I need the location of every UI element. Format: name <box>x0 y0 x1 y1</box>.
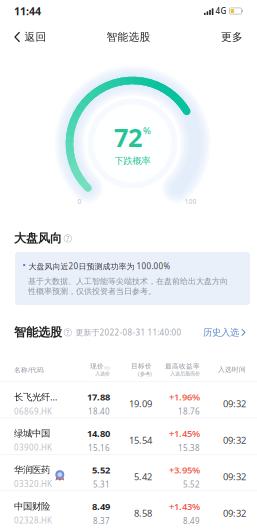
button[interactable]: 更多 <box>219 24 245 49</box>
staticText: 8.49 <box>92 500 110 512</box>
staticText: 8.49 <box>183 515 200 526</box>
staticText: 中国财险 <box>14 501 50 512</box>
staticText: (参考) <box>138 370 152 377</box>
staticText: 入选后最高价 <box>170 370 200 377</box>
staticText: 历史入选 <box>203 327 239 338</box>
staticText: 基于大数据、人工智能等尖端技术，在盘前给出大盘方向 性概率预测，仅供投资者当日参… <box>28 276 228 296</box>
staticText: 现价 <box>90 362 104 370</box>
staticText: 5.42 <box>134 470 152 483</box>
staticText: 02328.HK <box>14 515 52 526</box>
button[interactable]: 绿城中国 <box>0 417 257 454</box>
staticText: 100 <box>184 197 196 206</box>
staticText: 更新于2022-08-31 11:40:00 <box>75 327 181 338</box>
staticText: ? <box>66 234 69 243</box>
staticText: 智能选股 <box>14 325 62 340</box>
staticText: 72 <box>114 120 142 154</box>
staticText: 06869.HK <box>14 406 52 417</box>
staticText: 18.40 <box>88 406 110 417</box>
staticText: 更多 <box>221 30 243 43</box>
staticText: 14.80 <box>87 427 110 439</box>
button[interactable]: 中国财险 <box>0 490 257 527</box>
button[interactable]: 返回 <box>12 24 48 49</box>
staticText: 8.37 <box>93 515 110 526</box>
staticText: +1.45% <box>169 427 200 439</box>
staticText: +3.95% <box>169 464 200 476</box>
staticText: 长飞光纤… <box>14 391 57 403</box>
staticText: 大盘风向 <box>14 231 62 246</box>
button[interactable]: 华润医药 <box>0 454 257 490</box>
staticText: 17.88 <box>87 391 110 403</box>
staticText: % <box>143 124 151 137</box>
staticText: 名称/代码 <box>14 365 44 374</box>
staticText: 5.52 <box>92 464 110 476</box>
staticText: 0 <box>77 197 81 206</box>
staticText: 15.54 <box>129 434 152 446</box>
staticText: 绿城中国 <box>14 428 50 439</box>
staticText: 19.09 <box>129 397 152 410</box>
staticText: 03900.HK <box>14 442 52 453</box>
staticText: ? <box>66 328 69 337</box>
staticText: 4G <box>215 6 226 16</box>
staticText: 5.31 <box>93 479 110 490</box>
staticText: 15.16 <box>88 442 110 453</box>
staticText: 09:32 <box>223 507 246 519</box>
staticText: 09:32 <box>223 397 246 410</box>
staticText: 智能选股 <box>106 30 150 43</box>
button[interactable]: 历史入选 <box>203 327 246 338</box>
button[interactable]: 长飞光纤… <box>0 381 257 417</box>
staticText: 18.76 <box>178 406 200 417</box>
staticText: +1.96% <box>169 391 200 403</box>
staticText: 09:32 <box>223 470 246 483</box>
staticText: 09:32 <box>223 434 246 446</box>
staticText: 15.38 <box>178 442 200 453</box>
staticText: 5.52 <box>183 479 200 490</box>
staticText: 华润医药 <box>14 464 50 476</box>
staticText: 大盘风向近20日预测成功率为 100.00% <box>28 261 170 271</box>
staticText: 入选价 <box>95 370 110 377</box>
staticText: 最高收益率 <box>165 362 200 370</box>
staticText: 11:44 <box>14 4 41 18</box>
staticText: +1.43% <box>169 500 200 512</box>
staticText: (元) <box>104 365 110 370</box>
staticText: 8.58 <box>134 507 152 519</box>
staticText: 入选时间 <box>218 365 246 374</box>
staticText: 返回 <box>24 30 46 43</box>
staticText: 下跌概率 <box>114 155 150 167</box>
staticText: 03320.HK <box>14 478 52 489</box>
staticText: 目标价 <box>131 362 152 370</box>
